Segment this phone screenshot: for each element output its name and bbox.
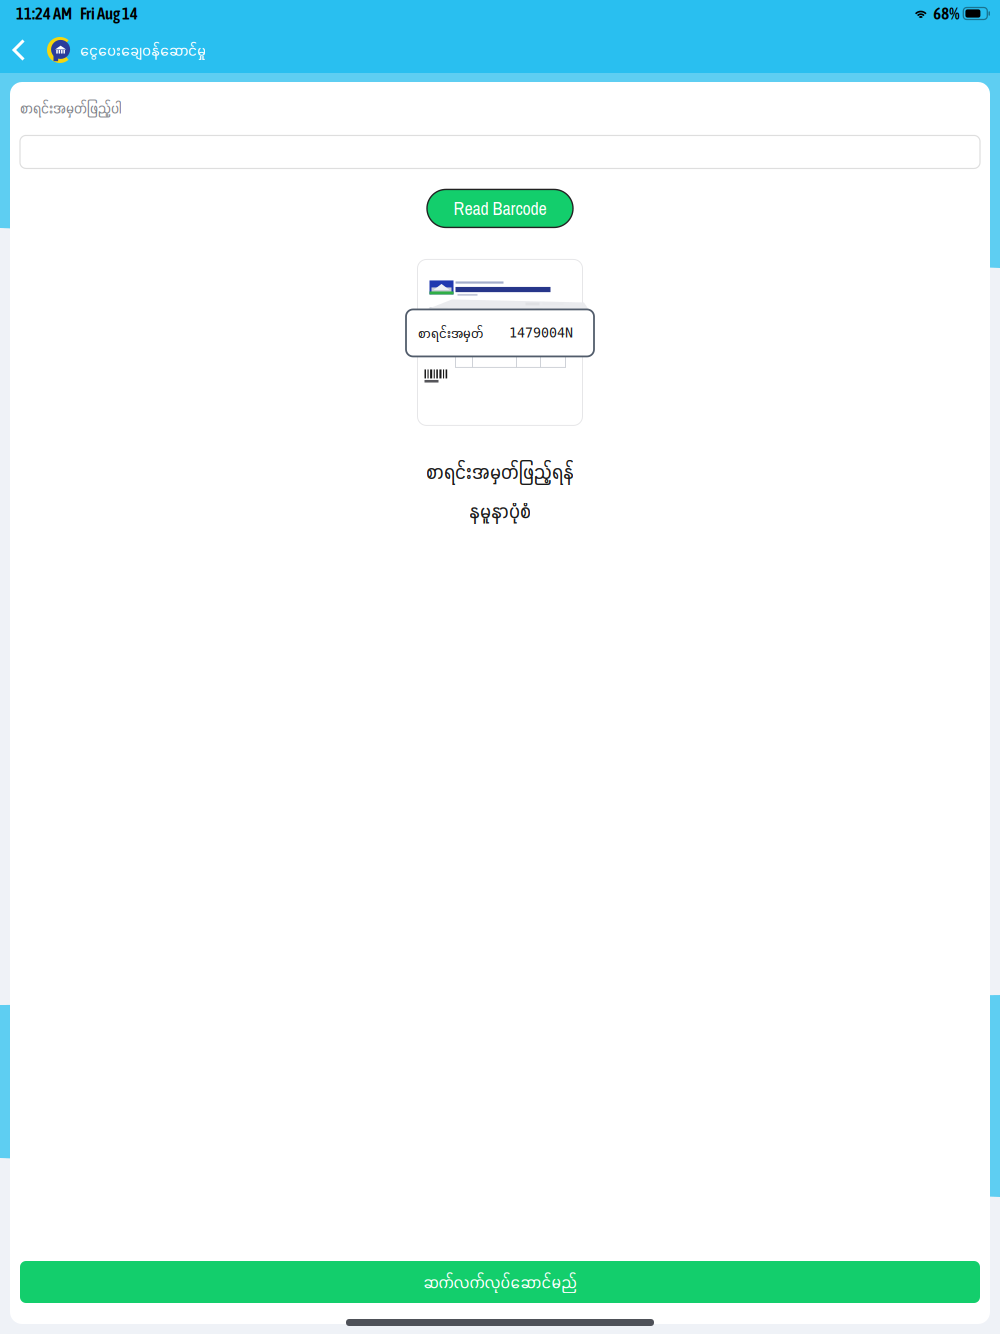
- button[interactable]: ဆက်လက်လုပ်ဆောင်မည်: [20, 1261, 980, 1303]
- staticText: 68%: [933, 4, 959, 23]
- button[interactable]: Read Barcode: [427, 189, 573, 227]
- staticText: စာရင်းအမှတ်: [418, 324, 483, 342]
- staticText: Fri Aug 14: [80, 4, 138, 23]
- staticText: နမူနာပုံစံ: [469, 499, 531, 524]
- staticText: ဆက်လက်လုပ်ဆောင်မည်: [423, 1271, 576, 1293]
- staticText: Read Barcode: [453, 196, 546, 220]
- staticText: စာရင်းအမှတ်ဖြည့်ရန်: [426, 459, 574, 484]
- button[interactable]: Back: [1, 27, 37, 73]
- staticText: စာရင်းအမှတ်ဖြည့်ပါ: [20, 99, 122, 117]
- staticText: 11:24 AM: [16, 4, 72, 23]
- staticText: 1479004N: [509, 325, 573, 341]
- staticText: ငွေပေးချေဝန်ဆောင်မှု: [80, 40, 206, 60]
